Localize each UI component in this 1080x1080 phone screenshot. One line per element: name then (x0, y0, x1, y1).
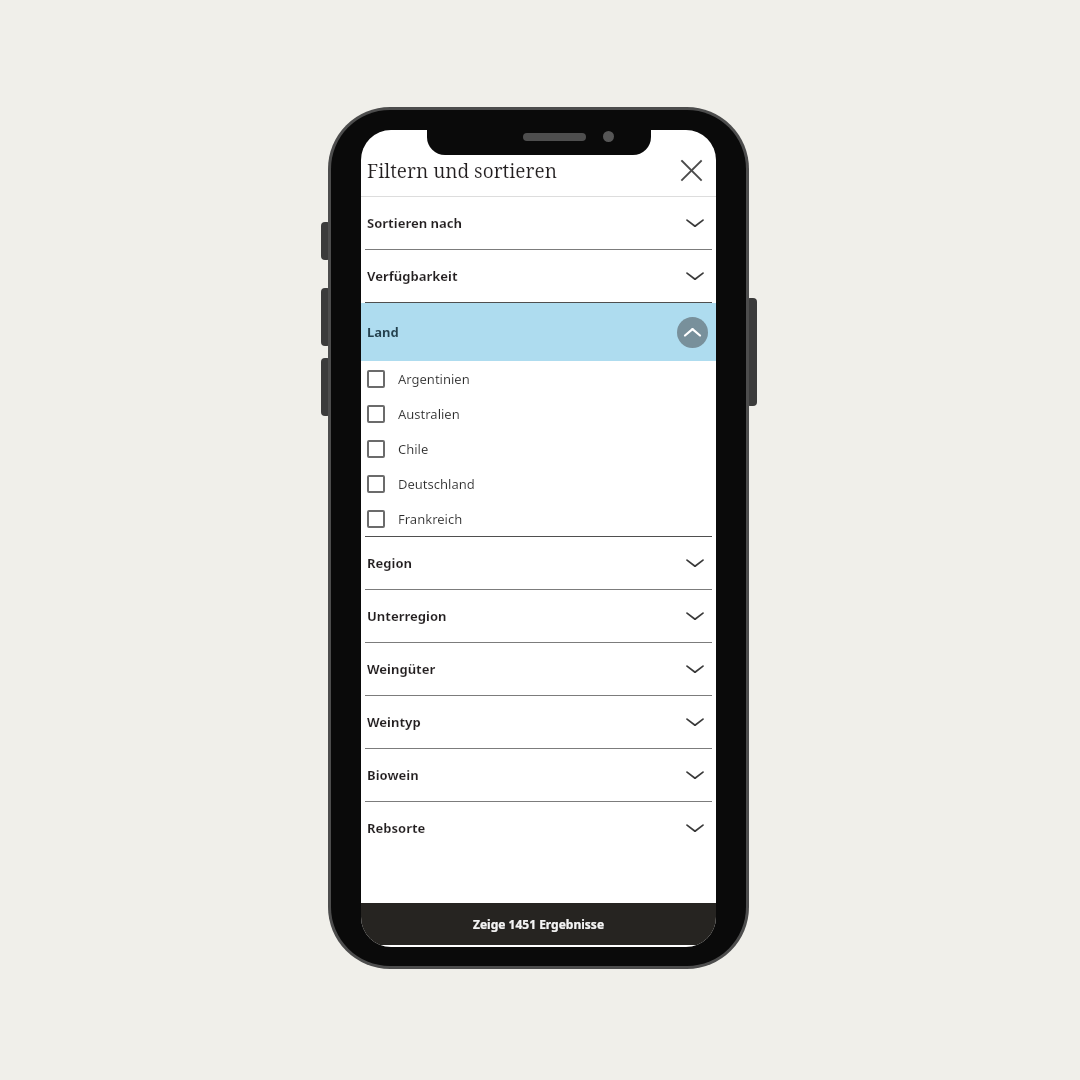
button[interactable]: Land einklappen (677, 317, 708, 348)
button[interactable]: Zeige 1451 Ergebnisse (361, 903, 716, 945)
button[interactable]: Unterregion (361, 590, 716, 642)
staticText: Region (367, 554, 412, 572)
staticText: Deutschland (398, 475, 475, 493)
staticText: Rebsorte (367, 819, 426, 837)
staticText: Land (367, 323, 399, 341)
staticText: Argentinien (398, 370, 470, 388)
button[interactable]: Weintyp (361, 696, 716, 748)
button[interactable]: Argentinien (361, 361, 716, 396)
button[interactable]: Rebsorte (361, 802, 716, 854)
staticText: Chile (398, 440, 429, 458)
button[interactable]: Chile (361, 431, 716, 466)
staticText: Filtern und sortieren (367, 158, 557, 184)
staticText: Weingüter (367, 660, 436, 678)
button[interactable]: Weingüter (361, 643, 716, 695)
staticText: Unterregion (367, 607, 447, 625)
staticText: Zeige 1451 Ergebnisse (473, 916, 605, 932)
staticText: Australien (398, 405, 460, 423)
staticText: Frankreich (398, 510, 463, 528)
staticText: Sortieren nach (367, 214, 462, 232)
button[interactable]: Sortieren nach (361, 197, 716, 249)
button[interactable]: Verfügbarkeit (361, 250, 716, 302)
staticText: Weintyp (367, 713, 421, 731)
staticText: Biowein (367, 766, 419, 784)
button[interactable]: Biowein (361, 749, 716, 801)
button[interactable]: Land (361, 303, 716, 361)
button[interactable]: Deutschland (361, 466, 716, 501)
button[interactable]: Schließen (671, 150, 711, 190)
button[interactable]: Region (361, 537, 716, 589)
button[interactable]: Australien (361, 396, 716, 431)
button[interactable]: Frankreich (361, 501, 716, 536)
staticText: Verfügbarkeit (367, 267, 458, 285)
